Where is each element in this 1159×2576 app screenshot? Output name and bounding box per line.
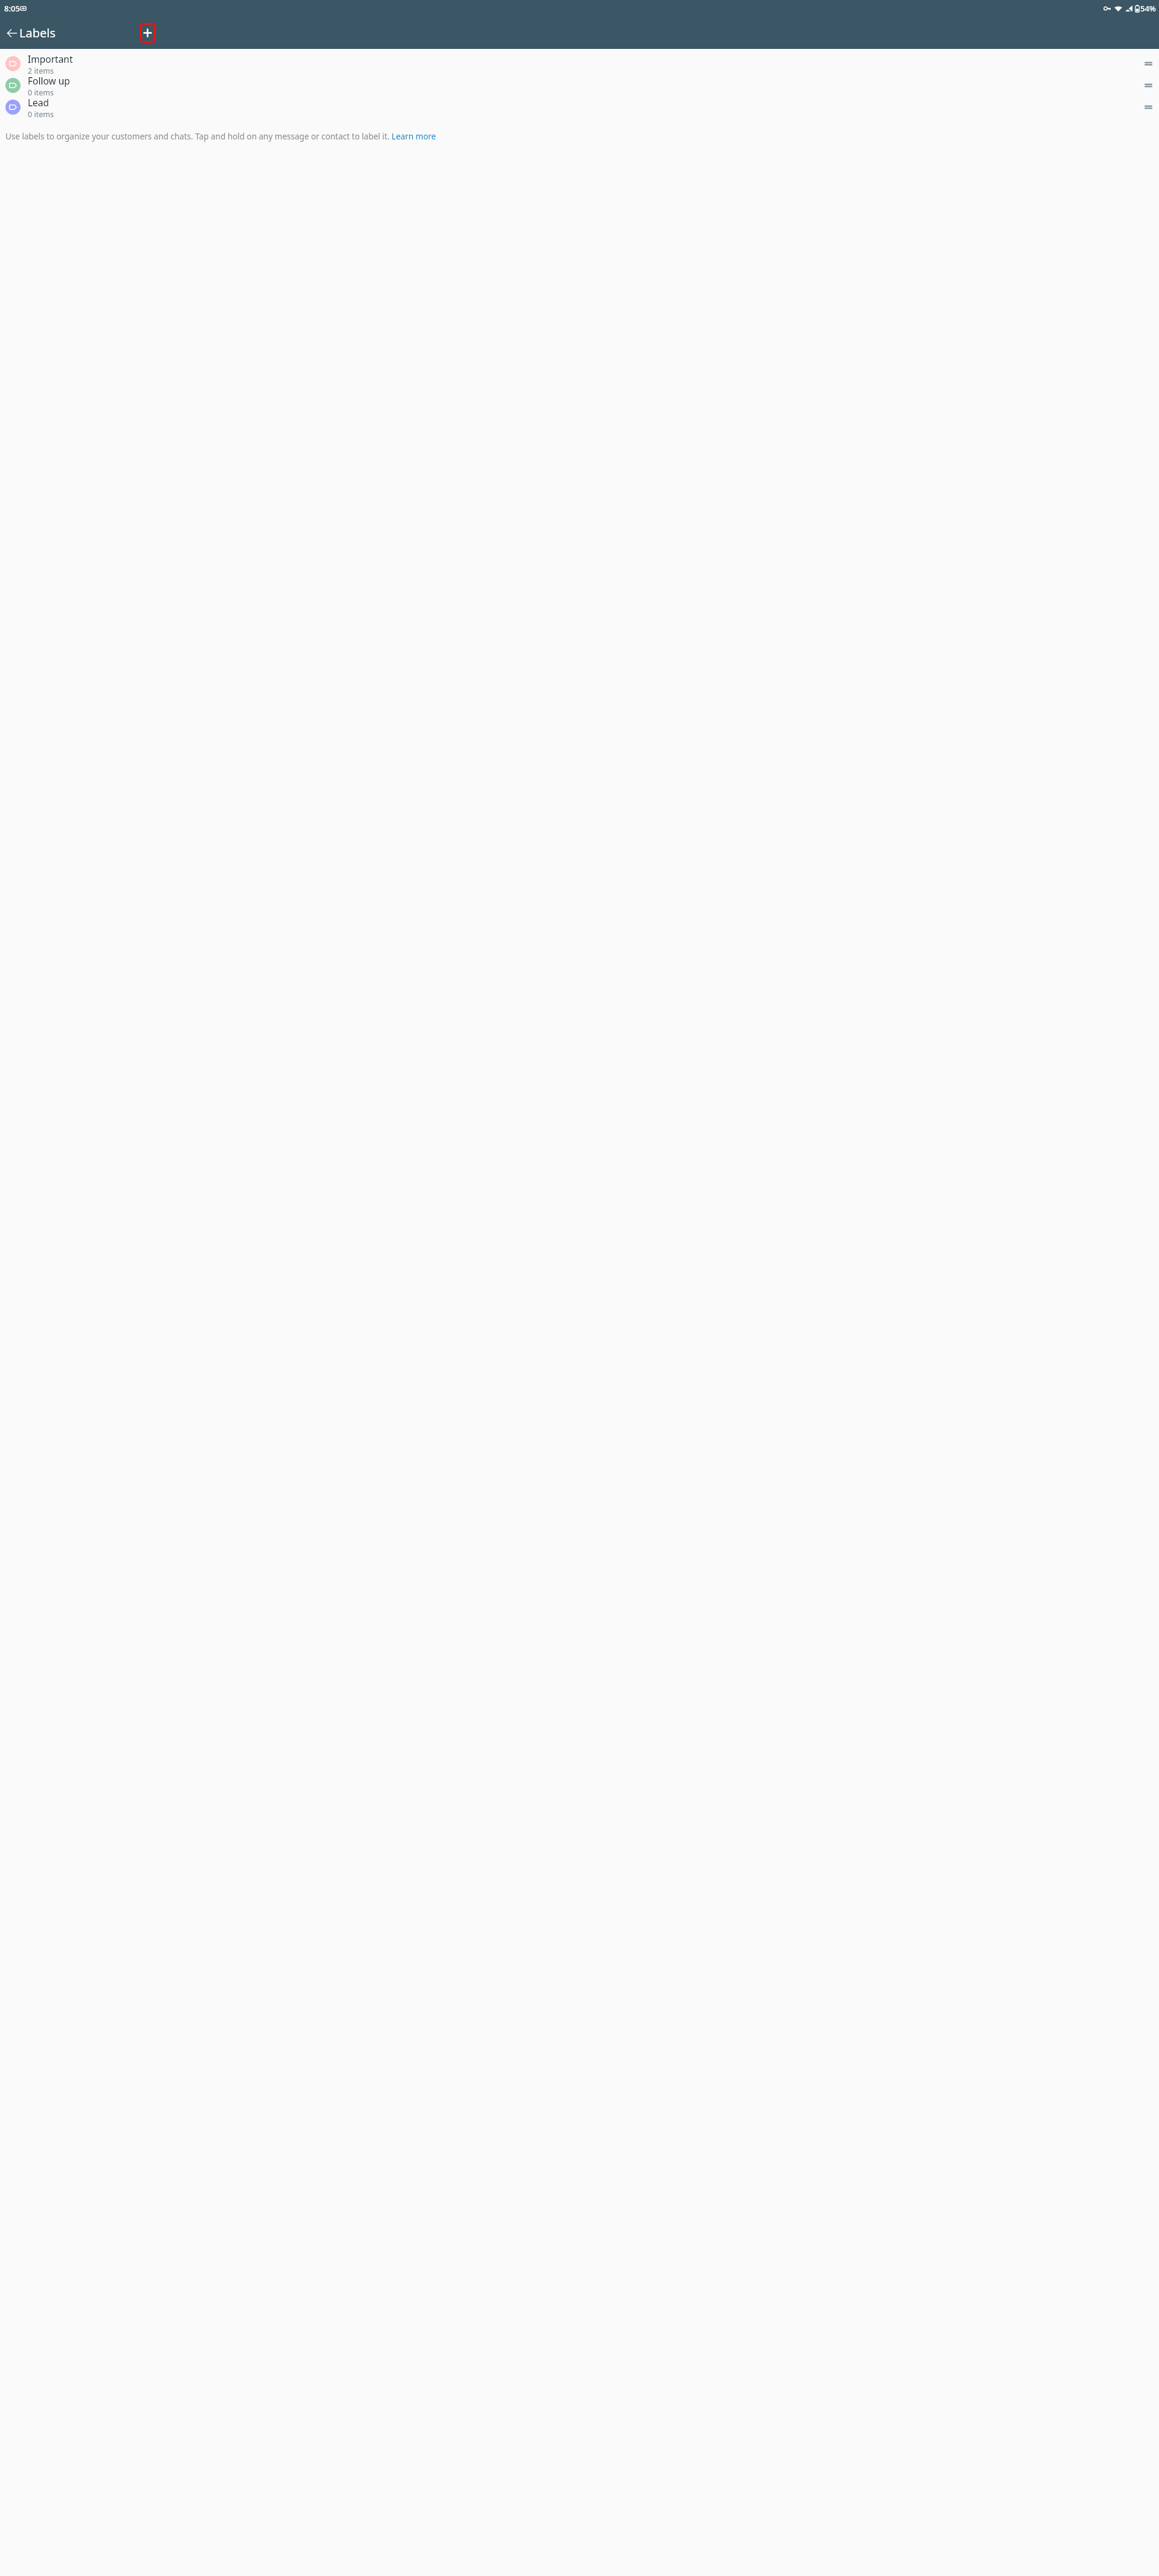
staticText: Lead [28,96,49,109]
staticText: Follow up [28,74,70,87]
staticText: 0 items [28,88,54,96]
button[interactable]: Reorder Important [1139,54,1157,72]
staticText: 54% [1140,3,1156,14]
button[interactable]: Use labels to organize your customers an… [5,131,1152,142]
button[interactable]: Reorder Follow up [1139,76,1157,94]
staticText: 2 items [28,66,54,74]
button[interactable]: Back [4,25,20,41]
button[interactable]: Follow up [0,74,1159,96]
button[interactable]: Reorder Lead [1139,98,1157,116]
staticText: Labels [19,25,56,41]
staticText: Use labels to organize your customers an… [5,131,436,142]
staticText: Important [28,53,73,65]
button[interactable]: Add label [139,23,156,43]
staticText: 8:05 [4,3,20,14]
staticText: 0 items [28,109,54,118]
button[interactable]: Lead [0,96,1159,118]
button[interactable]: Important [0,53,1159,74]
